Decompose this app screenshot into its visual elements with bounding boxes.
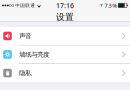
staticText: 17:16	[56, 1, 74, 10]
staticText: 设置	[56, 11, 74, 22]
staticText: 隐私	[19, 69, 31, 77]
staticText: 墙纸与亮度	[19, 50, 49, 59]
staticText: 中国联通	[15, 3, 35, 8]
staticText: 声音	[19, 32, 31, 40]
staticText: 73%	[104, 1, 117, 10]
button[interactable]: 声音	[0, 27, 130, 45]
button[interactable]: 隐私	[0, 64, 130, 82]
button[interactable]: 墙纸与亮度	[0, 45, 130, 63]
